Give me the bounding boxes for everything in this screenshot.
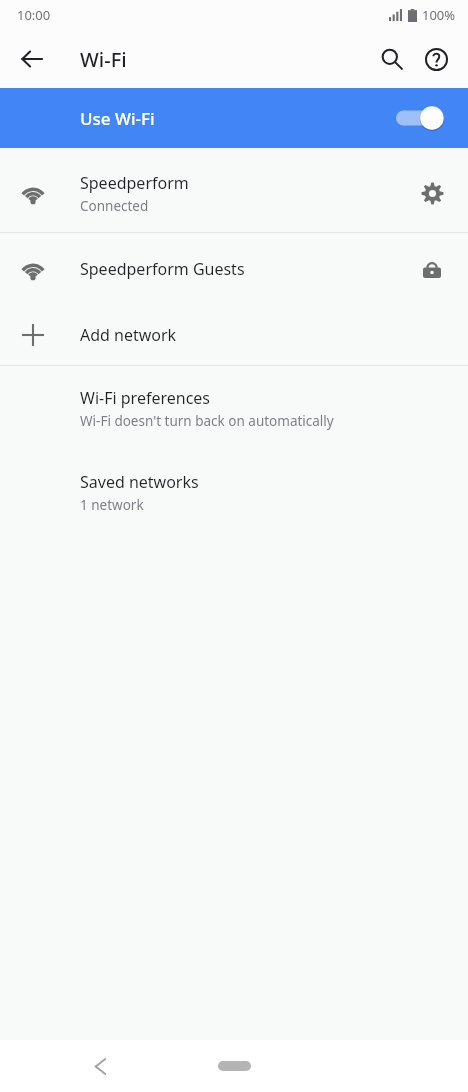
staticText: Add network — [80, 324, 177, 346]
button[interactable]: Back — [8, 35, 56, 83]
button[interactable]: Search — [370, 37, 414, 81]
button[interactable]: Speedperform — [0, 154, 468, 232]
staticText: Wi-Fi doesn't turn back on automatically — [80, 412, 334, 430]
button[interactable]: Saved networks — [0, 450, 468, 534]
staticText: 100% — [422, 6, 456, 24]
staticText: Wi-Fi preferences — [80, 387, 211, 409]
staticText: 1 network — [80, 496, 144, 514]
button[interactable]: Use Wi-Fi — [0, 88, 468, 148]
staticText: Use Wi-Fi — [80, 107, 155, 130]
button[interactable]: Wi-Fi preferences — [0, 366, 468, 450]
button[interactable]: Add network — [0, 305, 468, 365]
staticText: 10:00 — [17, 6, 51, 24]
staticText: Saved networks — [80, 471, 199, 493]
button[interactable]: Home — [204, 1049, 264, 1083]
staticText: Speedperform Guests — [80, 258, 245, 280]
staticText: Connected — [80, 197, 149, 215]
button[interactable]: Network settings — [410, 171, 454, 215]
staticText: Wi-Fi — [80, 46, 127, 73]
button[interactable]: Help — [414, 37, 458, 81]
button[interactable]: Back — [78, 1043, 124, 1089]
button[interactable]: Speedperform Guests — [0, 233, 468, 305]
staticText: Speedperform — [80, 172, 189, 194]
